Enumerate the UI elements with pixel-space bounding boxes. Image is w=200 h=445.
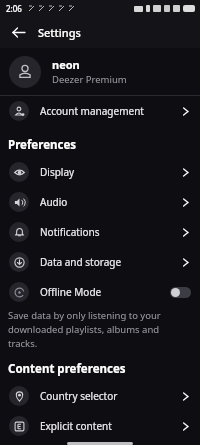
button[interactable]: Back — [6, 20, 30, 44]
staticText: Deezer Premium — [52, 73, 127, 86]
button[interactable]: Account management — [0, 96, 200, 126]
staticText: Data and storage — [40, 255, 122, 269]
button[interactable]: Offline Mode — [0, 277, 200, 307]
staticText: Save data by only listening to your down… — [8, 309, 188, 350]
staticText: Notifications — [40, 225, 100, 239]
button[interactable]: neon — [0, 48, 200, 95]
button[interactable]: Offline Mode toggle — [170, 287, 191, 298]
staticText: 2:06 — [6, 3, 22, 14]
staticText: Content preferences — [8, 361, 126, 377]
staticText: Settings — [38, 25, 81, 40]
staticText: neon — [52, 57, 80, 72]
button[interactable]: Notifications — [0, 217, 200, 247]
staticText: Account management — [40, 104, 144, 118]
button[interactable]: Data and storage — [0, 247, 200, 277]
button[interactable]: Display — [0, 157, 200, 187]
staticText: Offline Mode — [40, 285, 102, 299]
staticText: Explicit content — [40, 419, 112, 433]
staticText: Display — [40, 165, 75, 179]
staticText: Preferences — [8, 137, 77, 153]
button[interactable]: Explicit content — [0, 411, 200, 441]
button[interactable]: Audio — [0, 187, 200, 217]
button[interactable]: Country selector — [0, 381, 200, 411]
staticText: Country selector — [40, 389, 118, 403]
staticText: Audio — [40, 195, 68, 209]
